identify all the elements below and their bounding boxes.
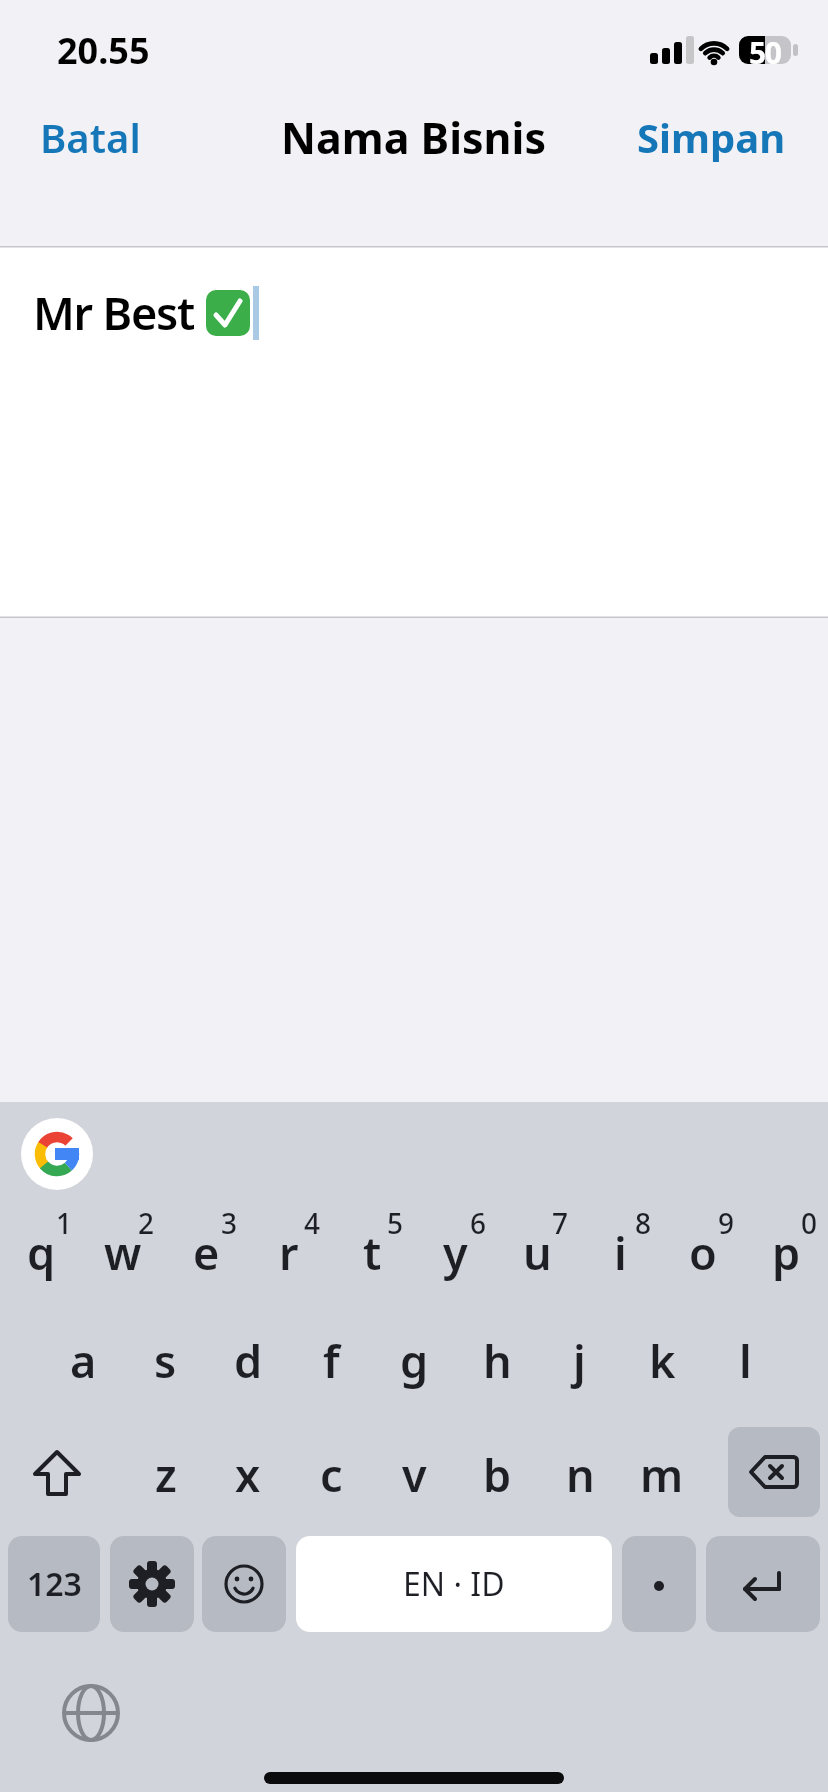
staticText: y [443,1222,468,1283]
staticText: t [363,1222,382,1283]
staticText: 4 [304,1204,321,1240]
staticText: 6 [470,1204,487,1240]
staticText: 20.55 [57,26,150,75]
button[interactable]: o [663,1205,743,1299]
staticText: Nama Bisnis [281,108,547,166]
staticText: 9 [718,1204,735,1240]
button[interactable] [622,1536,696,1632]
button[interactable]: u [497,1205,577,1299]
button[interactable]: r [249,1205,329,1299]
button[interactable]: k [622,1313,702,1407]
staticText: 8 [635,1204,652,1240]
button[interactable]: i [580,1205,660,1299]
button[interactable]: 123 [8,1536,100,1632]
button[interactable] [14,1427,100,1519]
button[interactable] [202,1536,286,1632]
staticText: 7 [552,1204,569,1240]
staticText: x [235,1444,261,1505]
button[interactable]: m [622,1427,702,1521]
staticText: m [640,1444,684,1505]
button[interactable]: t [332,1205,412,1299]
staticText: r [279,1222,299,1283]
staticText: k [649,1330,676,1391]
staticText: 5 [387,1204,404,1240]
button[interactable]: e [166,1205,246,1299]
button[interactable]: y [415,1205,495,1299]
staticText: o [689,1222,717,1283]
button[interactable]: l [705,1313,785,1407]
staticText: h [483,1330,512,1391]
button[interactable]: n [540,1427,620,1521]
button[interactable]: s [125,1313,205,1407]
button[interactable]: p [746,1205,826,1299]
staticText: e [193,1222,220,1283]
staticText: 1 [56,1204,73,1240]
staticText: v [402,1444,427,1505]
staticText: Batal [40,110,141,164]
staticText: q [27,1222,56,1283]
staticText: u [523,1222,552,1283]
button[interactable]: EN · ID [296,1536,612,1632]
button[interactable]: j [539,1313,619,1407]
button[interactable]: d [208,1313,288,1407]
staticText: l [739,1330,752,1391]
button[interactable]: h [457,1313,537,1407]
button[interactable]: w [83,1205,163,1299]
button[interactable]: c [291,1427,371,1521]
button[interactable]: Simpan [637,110,786,164]
button[interactable] [728,1427,820,1517]
button[interactable] [60,1682,122,1744]
staticText: c [320,1444,343,1505]
button[interactable]: f [291,1313,371,1407]
staticText: n [566,1444,595,1505]
staticText: s [154,1330,177,1391]
staticText: w [104,1222,142,1283]
staticText: a [70,1330,97,1391]
button[interactable]: b [457,1427,537,1521]
button[interactable]: a [43,1313,123,1407]
staticText: g [400,1330,429,1391]
staticText: Mr Best [33,282,195,343]
staticText: z [155,1444,177,1505]
button[interactable] [110,1536,194,1632]
button[interactable]: z [126,1427,206,1521]
button[interactable] [706,1536,820,1632]
button[interactable]: q [1,1205,81,1299]
staticText: 50 [749,32,781,68]
staticText: 2 [138,1204,155,1240]
staticText: p [772,1222,801,1283]
staticText: b [483,1444,512,1505]
button[interactable]: Batal [40,108,141,166]
button[interactable]: v [374,1427,454,1521]
button[interactable]: g [374,1313,454,1407]
staticText: d [234,1330,263,1391]
staticText: 123 [27,1562,82,1606]
staticText: j [573,1330,586,1391]
staticText: EN · ID [403,1562,505,1606]
staticText: f [323,1330,340,1391]
staticText: 3 [221,1204,238,1240]
staticText: i [614,1222,627,1283]
button[interactable]: x [208,1427,288,1521]
button[interactable] [21,1118,93,1190]
staticText: Simpan [637,110,786,164]
staticText: 0 [801,1204,818,1240]
